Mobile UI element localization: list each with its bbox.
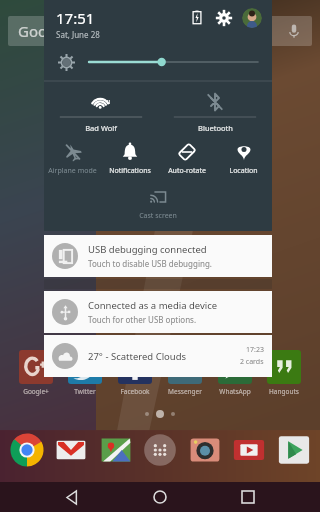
button[interactable]: 27° - Scattered Clouds [44, 335, 272, 377]
button[interactable]: Airplane mode [44, 143, 101, 176]
staticText: WhatsApp [219, 387, 251, 396]
button[interactable]: Cast screen [117, 188, 198, 221]
staticText: Sat, June 28 [56, 29, 100, 40]
staticText: Facebook [120, 387, 150, 396]
staticText: Hangouts [269, 387, 299, 396]
staticText: Connected as a media device [88, 299, 218, 312]
button[interactable]: User profile [242, 8, 262, 28]
staticText: Touch for other USB options. [88, 314, 197, 325]
button[interactable]: Battery [188, 8, 206, 26]
staticText: 17:23 [246, 345, 264, 355]
staticText: Notifications [109, 166, 151, 176]
staticText: Google+ [23, 387, 49, 396]
button[interactable]: WhatsApp [217, 350, 253, 396]
button[interactable]: Back [58, 482, 88, 512]
staticText: Touch to disable USB debugging. [88, 258, 212, 269]
staticText: 17:51 [56, 8, 95, 28]
staticText: Bluetooth [198, 123, 233, 133]
button[interactable]: Google [8, 16, 312, 46]
staticText: Location [229, 166, 258, 176]
button[interactable]: Brightness [44, 49, 272, 75]
button[interactable]: Hangouts [266, 350, 302, 396]
button[interactable]: Recent apps [233, 482, 263, 512]
button[interactable]: Connected as a media device [44, 291, 272, 333]
staticText: Messenger [168, 387, 202, 396]
staticText: Cast screen [139, 211, 177, 221]
button[interactable]: YouTube [229, 430, 269, 470]
button[interactable]: Home [145, 482, 175, 512]
button[interactable]: Auto-rotate [158, 143, 215, 176]
button[interactable]: Notifications [101, 143, 158, 176]
button[interactable]: Bad Wolf [44, 92, 158, 133]
button[interactable]: Facebook [117, 350, 153, 396]
staticText: Airplane mode [48, 166, 97, 176]
staticText: Auto-rotate [168, 166, 206, 176]
button[interactable]: Messenger [167, 350, 203, 396]
staticText: 2 cards [240, 357, 264, 367]
staticText: Bad Wolf [85, 123, 117, 133]
button[interactable]: Google+ [18, 350, 54, 396]
button[interactable]: Twitter [67, 350, 103, 396]
button[interactable]: Bluetooth [158, 92, 272, 133]
button[interactable]: Maps [96, 430, 136, 470]
button[interactable]: Apps [140, 430, 180, 470]
button[interactable]: Play Store [274, 430, 314, 470]
button[interactable]: Gmail [51, 430, 91, 470]
button[interactable]: Settings [214, 8, 234, 28]
button[interactable]: Location [215, 143, 272, 176]
staticText: 27° - Scattered Clouds [88, 350, 187, 363]
staticText: Google [18, 21, 69, 41]
button[interactable]: Camera [185, 430, 225, 470]
button[interactable]: Chrome [7, 430, 47, 470]
button[interactable]: USB debugging connected [44, 235, 272, 277]
staticText: Twitter [74, 387, 96, 396]
staticText: USB debugging connected [88, 243, 207, 256]
